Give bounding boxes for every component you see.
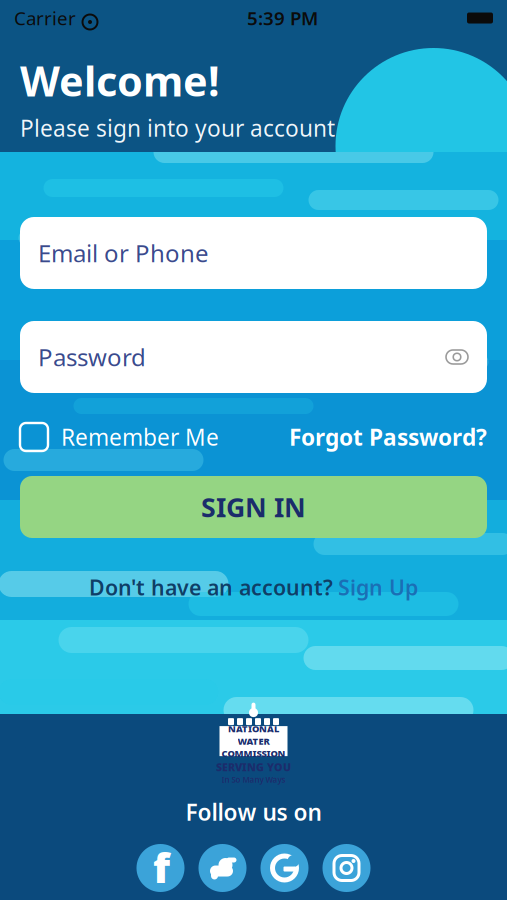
button[interactable]: Forgot Password? [289, 422, 487, 452]
button[interactable]: Don't have an account? [89, 573, 418, 601]
button[interactable]: Google [260, 844, 308, 892]
button[interactable]: Facebook [136, 844, 184, 892]
button[interactable]: SIGN IN [20, 476, 487, 538]
staticText: Sign Up [338, 573, 418, 601]
button[interactable]: Email or Phone [20, 217, 487, 289]
staticText: Forgot Password? [289, 422, 487, 452]
button[interactable]: Remember Me [20, 422, 219, 452]
button[interactable]: Twitter [198, 844, 246, 892]
staticText: WATER [237, 735, 269, 747]
staticText: In So Many Ways [221, 774, 285, 785]
staticText: SERVING YOU [216, 760, 291, 774]
staticText: Remember Me [61, 422, 219, 452]
staticText: COMMISSION [221, 747, 285, 760]
staticText: NATIONAL [228, 722, 279, 735]
staticText: SIGN IN [201, 489, 306, 525]
staticText: Welcome! [20, 53, 220, 108]
staticText: Email or Phone [38, 237, 209, 269]
staticText: Password [38, 341, 146, 373]
button[interactable]: Password [20, 321, 487, 393]
staticText: Follow us on [185, 797, 321, 827]
staticText: 5:39 PM [247, 6, 318, 30]
staticText: Carrier [14, 6, 76, 30]
staticText: Don't have an account? [89, 573, 333, 601]
staticText: Please sign into your account [20, 113, 335, 143]
staticText: f [153, 840, 170, 894]
button[interactable]: Instagram [322, 844, 370, 892]
